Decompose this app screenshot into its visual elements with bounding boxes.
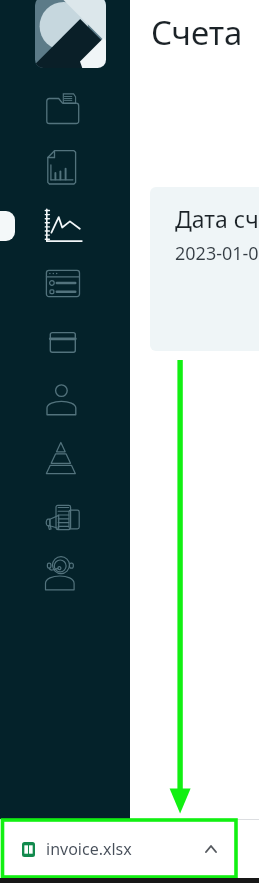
button[interactable]: Support [0,545,130,603]
button[interactable]: Collapse downloads [198,836,224,862]
button[interactable]: Documents [0,81,130,139]
button[interactable]: Reports [0,139,130,197]
button[interactable]: Profile [0,371,130,429]
staticText: Счета [151,10,243,55]
button[interactable]: Payments [0,313,130,371]
button[interactable]: Invoices [0,197,130,255]
button[interactable]: invoice.xlsx [5,822,234,876]
button[interactable]: Orders [0,255,130,313]
staticText: invoice.xlsx [46,838,132,860]
button[interactable]: Дата счета [150,187,259,351]
button[interactable]: Analytics [0,429,130,487]
button[interactable]: News [0,487,130,545]
staticText: 2023-01-06 [175,241,259,266]
staticText: Дата счета [175,203,259,234]
